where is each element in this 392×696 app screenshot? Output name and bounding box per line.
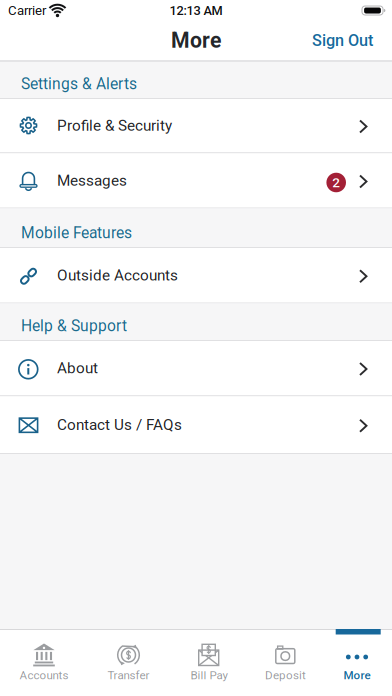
staticText: Deposit <box>265 668 306 682</box>
button[interactable]: Transfer <box>88 630 169 696</box>
staticText: 2 <box>332 174 340 190</box>
button[interactable]: Bill Pay <box>169 630 249 696</box>
staticText: Help & Support <box>21 317 127 335</box>
staticText: Messages <box>57 172 127 189</box>
button[interactable]: About <box>0 341 392 395</box>
button[interactable]: Sign Out <box>308 22 377 59</box>
button[interactable]: Messages <box>0 153 392 207</box>
staticText: Mobile Features <box>21 224 132 242</box>
staticText: 12:13 AM <box>169 3 222 18</box>
staticText: More <box>171 28 221 53</box>
staticText: Sign Out <box>312 31 373 50</box>
staticText: Outside Accounts <box>57 266 178 284</box>
staticText: More <box>343 668 370 682</box>
button[interactable]: Outside Accounts <box>0 248 392 302</box>
staticText: Contact Us / FAQs <box>57 416 182 434</box>
staticText: About <box>57 359 98 377</box>
button[interactable]: Contact Us / FAQs <box>0 396 392 453</box>
staticText: Bill Pay <box>190 668 227 682</box>
staticText: Settings & Alerts <box>21 75 137 93</box>
staticText: Transfer <box>107 668 149 682</box>
button[interactable]: Accounts <box>0 630 88 696</box>
staticText: Profile & Security <box>57 117 172 134</box>
button[interactable]: Profile & Security <box>0 99 392 152</box>
staticText: Accounts <box>19 668 68 682</box>
button[interactable]: More <box>322 630 392 696</box>
button[interactable]: Deposit <box>249 630 322 696</box>
staticText: Carrier <box>8 3 46 18</box>
